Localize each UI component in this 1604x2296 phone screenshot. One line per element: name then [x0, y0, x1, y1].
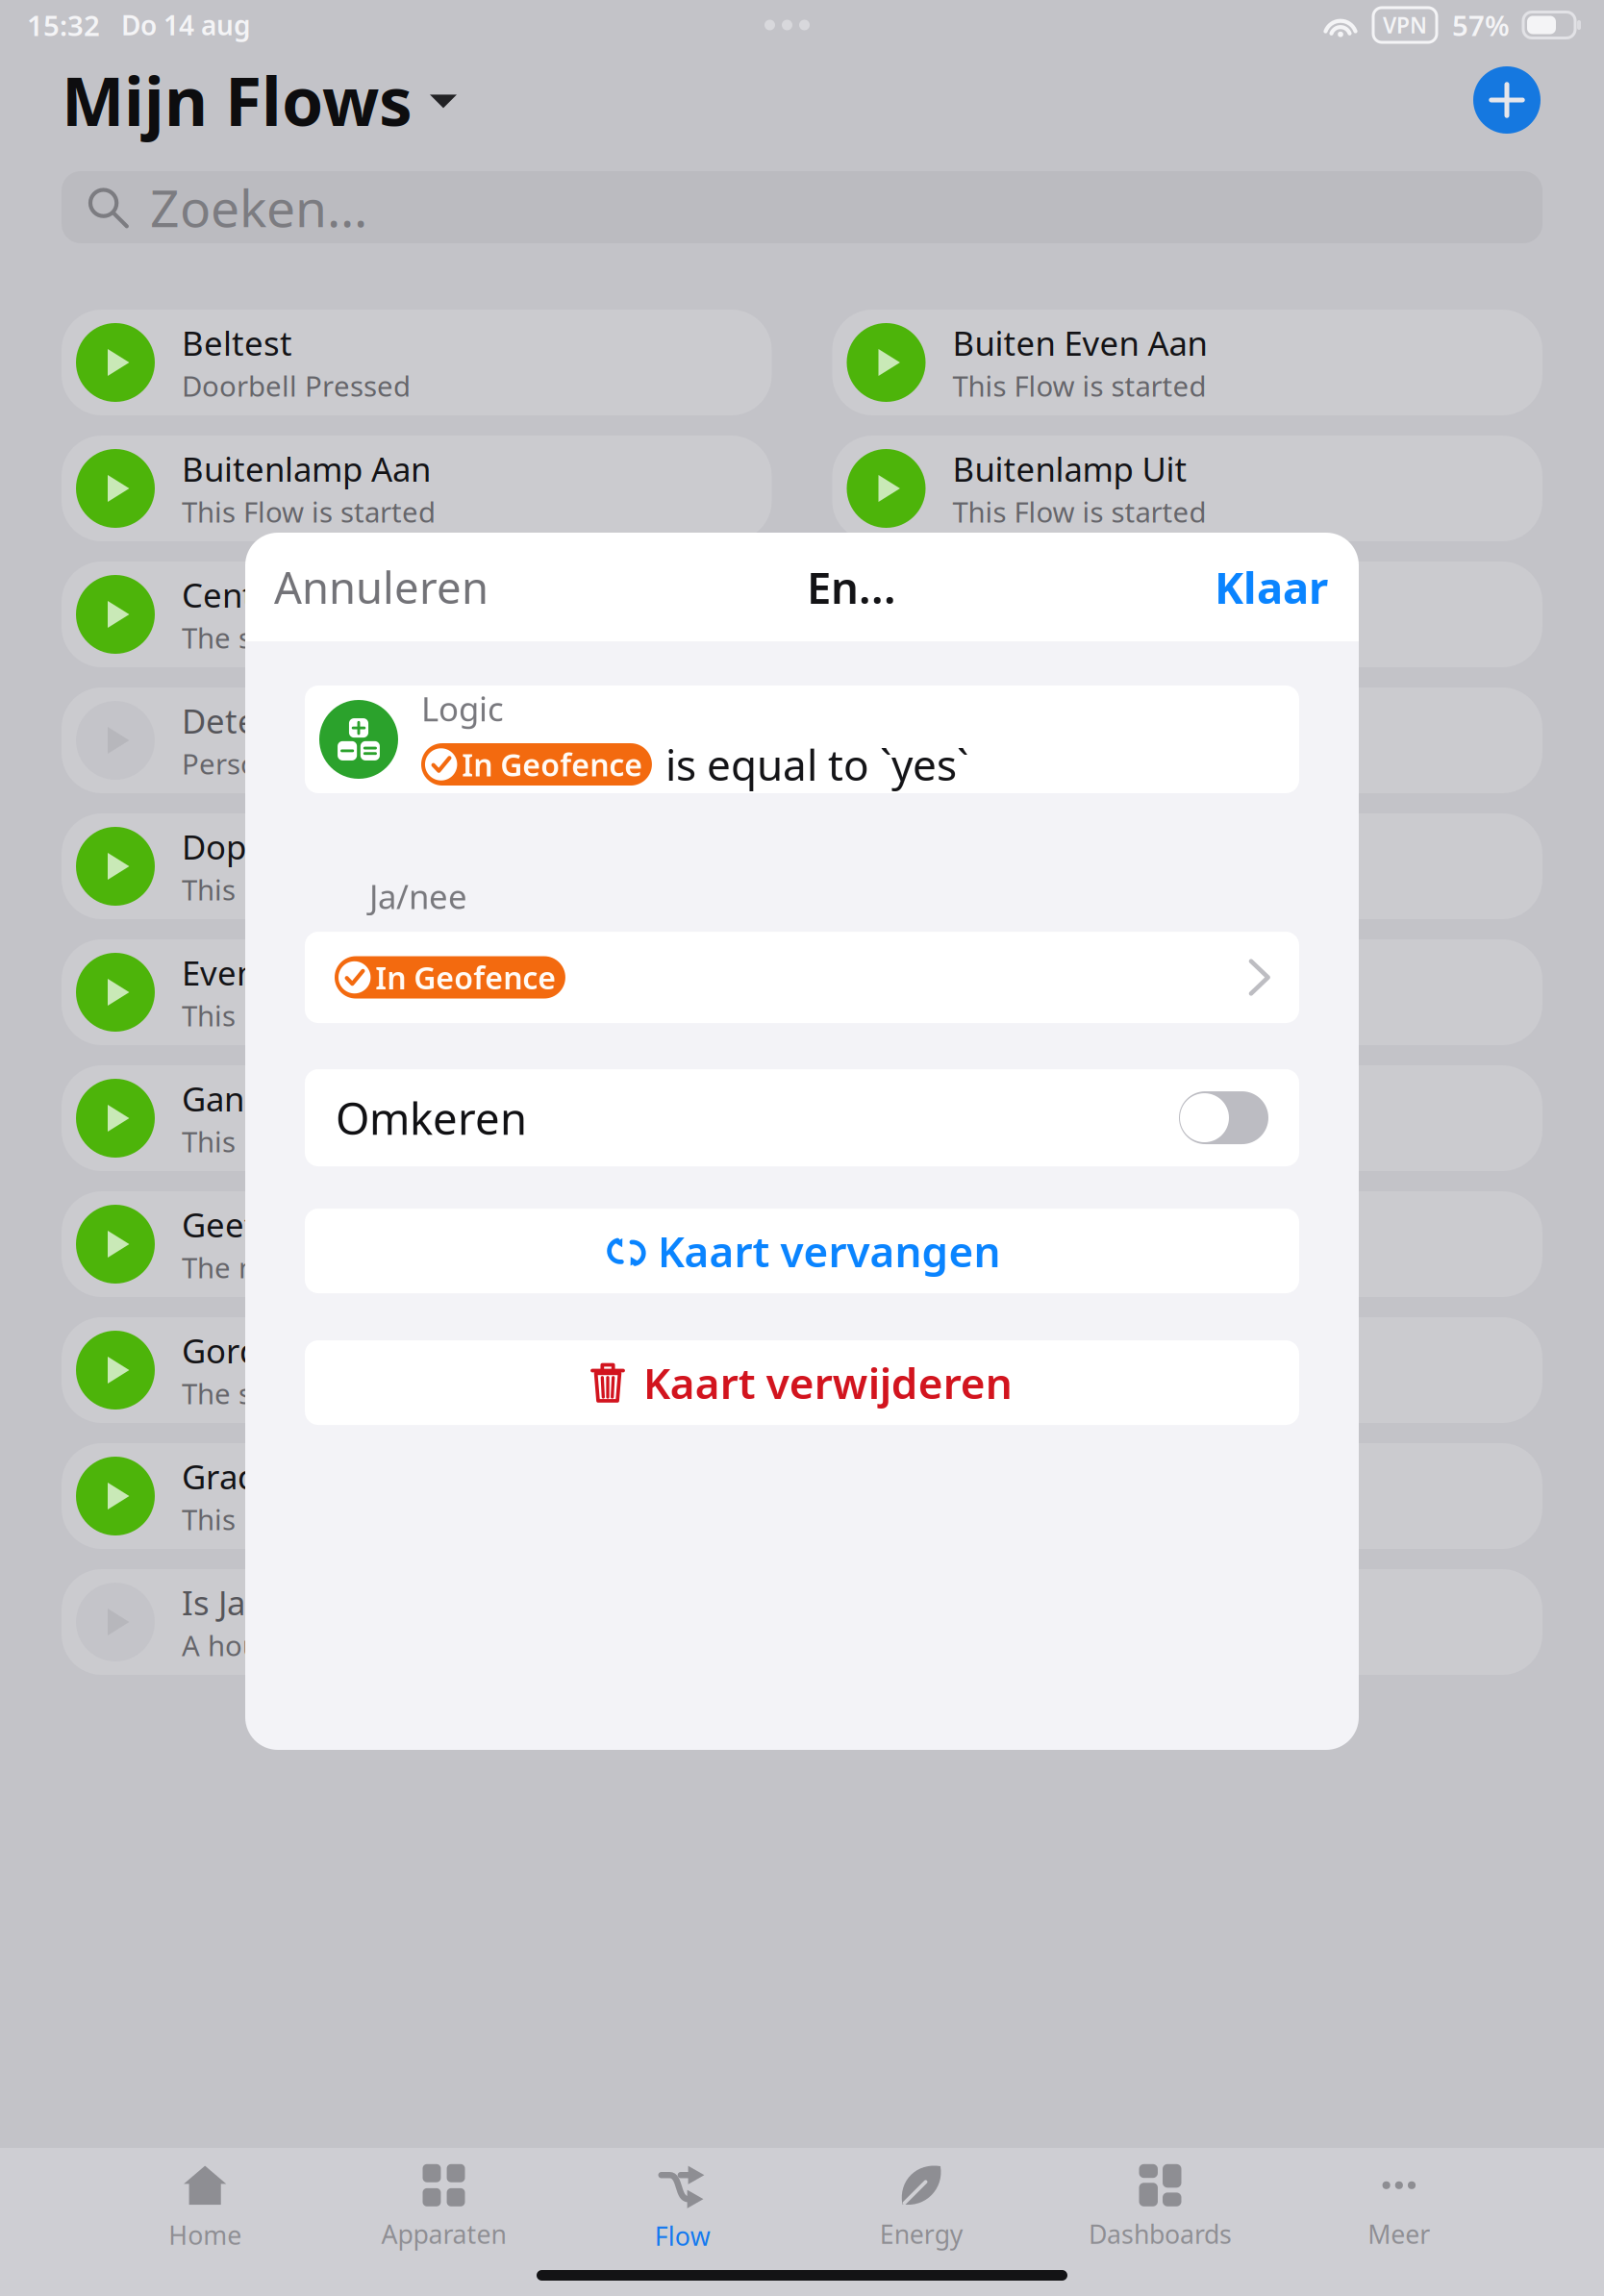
button[interactable]: Apparaten [324, 2154, 563, 2261]
staticText: This Flow is started [182, 1500, 436, 1538]
button[interactable]: Omkeren [305, 1069, 1299, 1166]
staticText: VPN [1383, 10, 1427, 39]
staticText: Flow [655, 2219, 710, 2253]
staticText: Gang licht [182, 1076, 339, 1121]
staticText: Home [168, 2218, 242, 2252]
staticText: Omkeren [336, 1089, 527, 1147]
staticText: Doppler radar [182, 824, 400, 869]
staticText: Geef melding [182, 1202, 392, 1247]
button[interactable]: Flow [563, 2154, 802, 2261]
staticText: Gordijnen dicht [182, 1328, 423, 1373]
button[interactable]: Annuleren [274, 545, 508, 629]
staticText: Meer [1368, 2217, 1430, 2251]
staticText: Buitenlamp Aan [182, 447, 431, 491]
button[interactable]: Klaar [1195, 545, 1328, 629]
staticText: This Flow is started [182, 997, 436, 1034]
staticText: A household member [182, 1626, 470, 1664]
staticText: Doorbell Pressed [182, 367, 411, 404]
staticText: This Flow is started [182, 493, 436, 530]
button[interactable]: Kaart vervangen [305, 1209, 1299, 1293]
staticText: En... [807, 558, 896, 616]
staticText: Kaart verwijderen [643, 1355, 1012, 1411]
staticText: Buiten Even Aan [952, 321, 1207, 365]
staticText: This Flow is started [952, 367, 1206, 404]
staticText: Apparaten [381, 2217, 506, 2251]
staticText: 15:32 [27, 6, 100, 44]
button[interactable]: Energy [802, 2154, 1041, 2261]
staticText: is equal to `yes` [665, 736, 968, 792]
button[interactable]: Zoeken... [62, 171, 1542, 243]
staticText: Ja/nee [369, 874, 467, 918]
staticText: Kaart vervangen [657, 1223, 1001, 1279]
staticText: This Flow is started [182, 871, 436, 908]
staticText: Detectie [182, 699, 313, 743]
staticText: This Flow is started [952, 493, 1206, 530]
staticText: This Flow is started [182, 1123, 436, 1160]
staticText: Person detected [182, 745, 401, 782]
staticText: Do 14 aug [121, 7, 251, 43]
staticText: The sun sets [182, 1374, 348, 1412]
staticText: Beltest [182, 321, 292, 365]
button[interactable]: Home [86, 2154, 324, 2261]
staticText: Dashboards [1089, 2217, 1232, 2251]
staticText: Logic [421, 686, 504, 731]
button[interactable]: In Geofence [305, 932, 1299, 1023]
staticText: Klaar [1215, 558, 1328, 616]
staticText: In Geofence [375, 957, 556, 998]
staticText: Even test [182, 950, 326, 995]
staticText: The mode changed [182, 1248, 438, 1286]
staticText: Is Jan thuis? [182, 1580, 366, 1624]
button[interactable]: Kaart verwijderen [305, 1340, 1299, 1425]
staticText: Annuleren [274, 558, 489, 616]
staticText: Mijn Flows [62, 56, 413, 144]
staticText: Energy [880, 2217, 963, 2251]
staticText: Zoeken... [150, 173, 367, 241]
button[interactable]: Dashboards [1041, 2154, 1280, 2261]
button[interactable]: Nieuwe Flow [1473, 66, 1541, 134]
staticText: The setpoint changed [182, 619, 471, 656]
staticText: Centrale verwarming [182, 573, 511, 617]
staticText: In Geofence [462, 744, 643, 785]
button[interactable]: Meer [1280, 2154, 1518, 2261]
staticText: Buitenlamp Uit [952, 447, 1187, 491]
staticText: 57% [1452, 6, 1510, 44]
staticText: Gradueel dimmen [182, 1454, 464, 1498]
button[interactable]: Mijn Flows [62, 50, 457, 150]
